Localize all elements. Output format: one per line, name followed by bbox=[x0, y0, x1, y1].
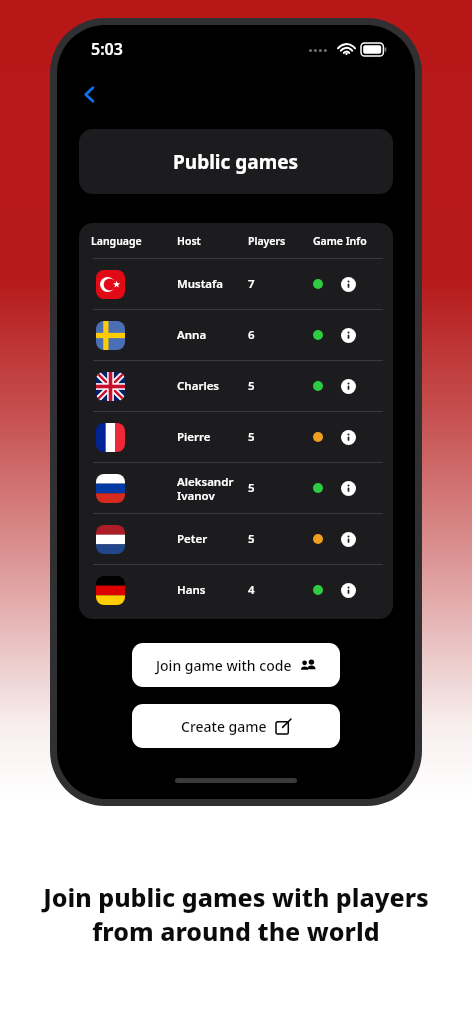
button[interactable]: Pierre bbox=[91, 412, 387, 462]
button[interactable]: Charles bbox=[91, 361, 387, 411]
staticText: 7 bbox=[248, 276, 255, 292]
staticText: 6 bbox=[248, 327, 255, 343]
button[interactable]: Game info bbox=[336, 272, 360, 296]
button[interactable]: Public games bbox=[79, 129, 393, 194]
button[interactable]: Game info bbox=[336, 527, 360, 551]
staticText: Game Info bbox=[313, 234, 367, 248]
staticText: 5 bbox=[248, 531, 255, 547]
staticText: Aleksandr Ivanov bbox=[177, 474, 234, 503]
staticText: Create game bbox=[181, 717, 267, 736]
staticText: Join public games with players from arou… bbox=[26, 880, 446, 948]
staticText: 5 bbox=[248, 378, 255, 394]
staticText: Anna bbox=[177, 327, 207, 343]
staticText: Public games bbox=[173, 149, 299, 175]
staticText: 4 bbox=[248, 582, 255, 598]
button[interactable]: Mustafa bbox=[91, 259, 387, 309]
staticText: Players bbox=[248, 234, 286, 248]
staticText: Mustafa bbox=[177, 276, 224, 292]
button[interactable]: Game info bbox=[336, 323, 360, 347]
staticText: Host bbox=[177, 234, 201, 248]
button[interactable]: Game info bbox=[336, 374, 360, 398]
staticText: Hans bbox=[177, 582, 206, 598]
staticText: 5:03 bbox=[91, 38, 123, 60]
button[interactable]: Game info bbox=[336, 476, 360, 500]
button[interactable]: Create game bbox=[132, 704, 340, 748]
staticText: Join game with code bbox=[156, 656, 292, 675]
button[interactable]: Game info bbox=[336, 425, 360, 449]
button[interactable]: Hans bbox=[91, 565, 387, 615]
button[interactable]: Aleksandr Ivanov bbox=[91, 463, 387, 513]
button[interactable]: Join game with code bbox=[132, 643, 340, 687]
button[interactable]: Game info bbox=[336, 578, 360, 602]
button[interactable]: Anna bbox=[91, 310, 387, 360]
button[interactable]: Back bbox=[68, 73, 110, 115]
staticText: Charles bbox=[177, 378, 220, 394]
button[interactable]: Peter bbox=[91, 514, 387, 564]
staticText: 5 bbox=[248, 429, 255, 445]
staticText: Language bbox=[91, 234, 142, 248]
staticText: 5 bbox=[248, 480, 255, 496]
staticText: Pierre bbox=[177, 429, 211, 445]
staticText: Peter bbox=[177, 531, 208, 547]
